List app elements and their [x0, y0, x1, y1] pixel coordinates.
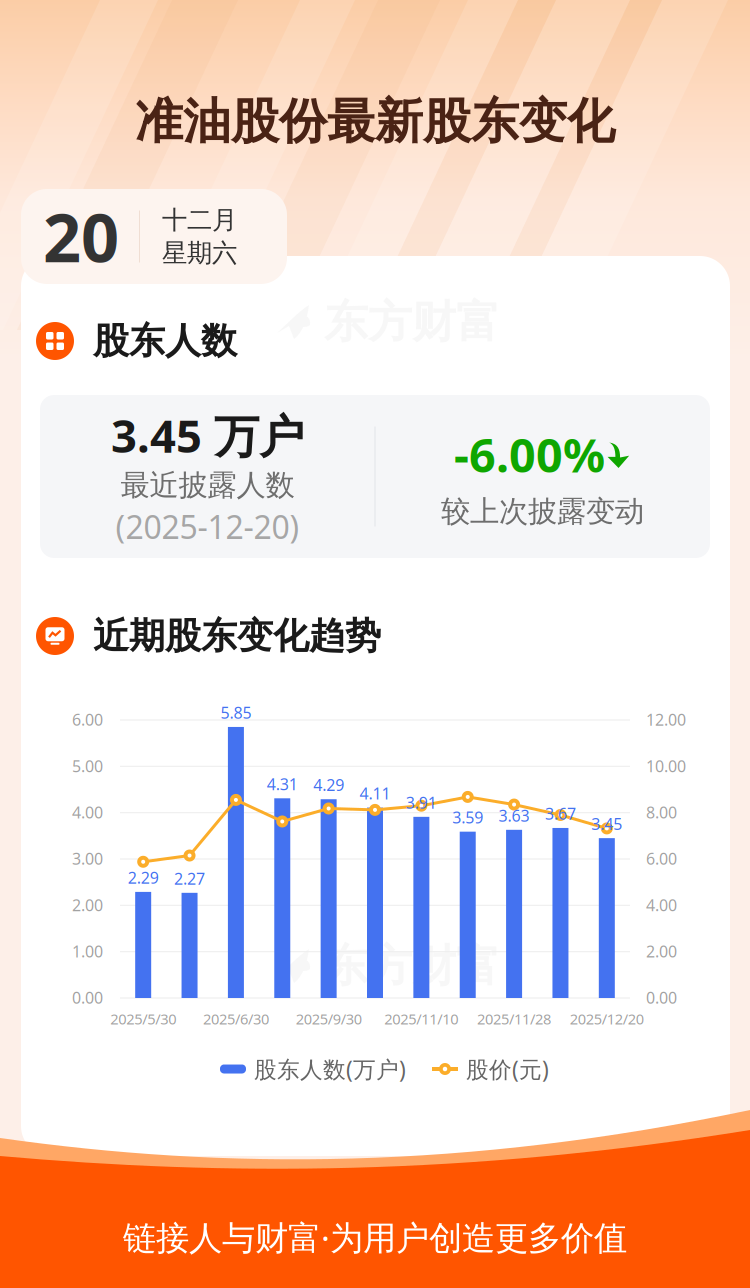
staticText: 4.29	[313, 774, 344, 795]
staticText: 东方财富	[324, 939, 500, 993]
staticText: 3.91	[406, 792, 437, 813]
staticText: 3.45	[591, 813, 622, 834]
staticText: 4.00	[72, 802, 103, 823]
staticText: 8.00	[646, 802, 677, 823]
staticText: (2025-12-20)	[115, 505, 299, 548]
staticText: 1.00	[72, 941, 103, 962]
staticText: 2.00	[646, 941, 677, 962]
button[interactable]: 20	[21, 189, 287, 284]
staticText: 2025/11/28	[477, 1009, 551, 1028]
staticText: 0.00	[646, 987, 677, 1008]
staticText: 2025/12/20	[570, 1009, 644, 1028]
staticText: 准油股份最新股东变化	[135, 92, 615, 151]
staticText: 5.85	[220, 702, 251, 723]
staticText: 股东人数(万户)	[254, 1054, 406, 1084]
staticText: 十二月	[162, 204, 237, 235]
staticText: 股价(元)	[466, 1054, 549, 1084]
staticText: 3.67	[545, 803, 576, 824]
staticText: 4.00	[646, 894, 677, 915]
staticText: 较上次披露变动	[441, 493, 644, 529]
staticText: 2025/9/30	[296, 1009, 362, 1028]
staticText: 2025/11/10	[384, 1009, 458, 1028]
staticText: 最近披露人数	[120, 467, 294, 503]
staticText: 星期六	[162, 237, 237, 269]
staticText: 10.00	[646, 755, 686, 776]
staticText: 0.00	[72, 987, 103, 1008]
staticText: 2.27	[174, 868, 205, 889]
staticText: 3.63	[499, 805, 530, 826]
staticText: 股东人数	[93, 319, 237, 363]
staticText: 12.00	[646, 709, 686, 730]
staticText: 3.00	[72, 848, 103, 869]
staticText: 6.00	[72, 709, 103, 730]
staticText: 4.11	[359, 783, 390, 804]
staticText: -6.00%	[454, 423, 605, 485]
staticText: 4.31	[267, 773, 298, 794]
staticText: 20	[43, 192, 119, 281]
staticText: 5.00	[72, 755, 103, 776]
staticText: 东方财富	[324, 295, 500, 349]
staticText: 近期股东变化趋势	[93, 614, 381, 658]
staticText: 6.00	[646, 848, 677, 869]
staticText: 3.45 万户	[111, 405, 304, 465]
staticText: 3.59	[452, 807, 483, 828]
staticText: 2.29	[128, 867, 159, 888]
staticText: 链接人与财富·为用户创造更多价值	[123, 1215, 627, 1259]
staticText: 2025/5/30	[110, 1009, 176, 1028]
staticText: 2025/6/30	[203, 1009, 269, 1028]
staticText: 2.00	[72, 894, 103, 915]
